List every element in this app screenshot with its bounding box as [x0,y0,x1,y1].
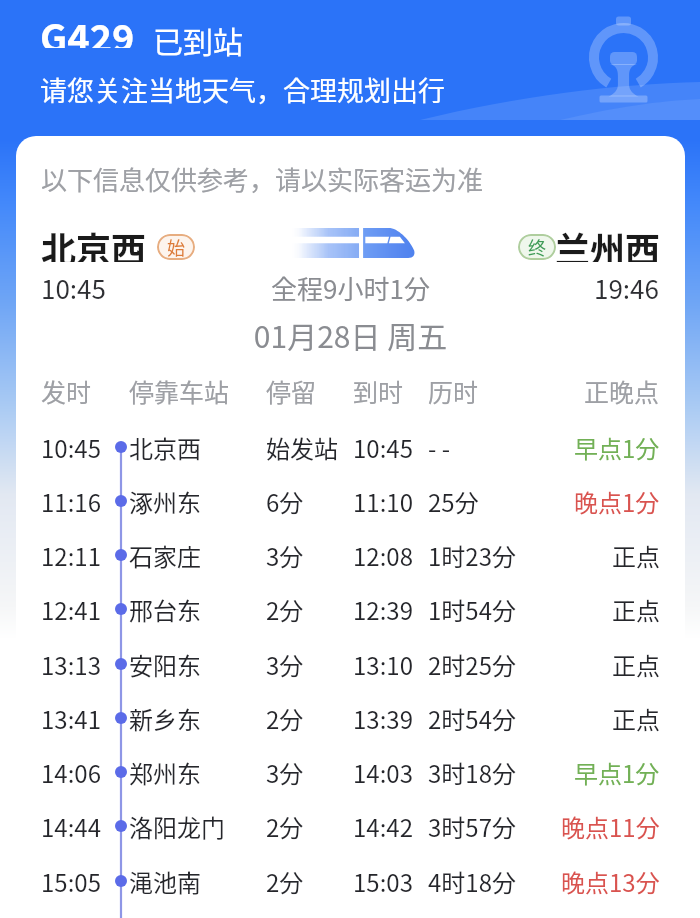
staticText: 全程9小时1分 [16,269,685,307]
staticText: 13:13 [41,647,101,682]
staticText: 4时18分 [428,864,516,899]
staticText: 3时57分 [428,809,516,844]
staticText: 正晚点 [584,373,660,409]
staticText: 2分 [266,809,304,844]
staticText: 正点 [612,538,660,573]
staticText: 洛阳龙门 [129,809,225,844]
button[interactable]: 13:41 [16,691,685,745]
staticText: 2时54分 [428,701,516,736]
staticText: 早点1分 [574,430,660,465]
staticText: 3分 [266,538,304,573]
staticText: 正点 [612,647,660,682]
staticText: 以下信息仅供参考，请以实际客运为准 [41,160,484,198]
staticText: 3分 [266,755,304,790]
staticText: 2分 [266,592,304,627]
staticText: 2时25分 [428,647,516,682]
staticText: 6分 [266,484,304,519]
button[interactable]: 14:06 [16,745,685,799]
staticText: 14:44 [41,809,101,844]
staticText: 12:41 [41,592,101,627]
staticText: 正点 [612,701,660,736]
staticText: 13:10 [353,647,413,682]
staticText: 14:42 [353,809,413,844]
staticText: 10:45 [353,430,413,465]
staticText: 01月28日 周五 [16,313,685,356]
staticText: 12:08 [353,538,413,573]
staticText: 兰州西 [555,222,661,262]
staticText: 晚点13分 [561,864,660,899]
staticText: 10:45 [41,269,106,307]
staticText: 1时23分 [428,538,516,573]
staticText: 正点 [612,592,660,627]
button[interactable]: 12:41 [16,582,685,636]
staticText: 北京西 [129,430,201,465]
staticText: 晚点11分 [561,809,660,844]
staticText: 2分 [266,701,304,736]
staticText: 到时 [353,373,404,409]
staticText: 13:39 [353,701,413,736]
button[interactable]: 11:16 [16,474,685,528]
staticText: 已到站 [153,18,243,58]
button[interactable]: 10:45 [16,420,685,474]
staticText: 晚点1分 [574,484,660,519]
staticText: 11:16 [41,484,101,519]
staticText: 始 [167,234,185,260]
staticText: 14:03 [353,755,413,790]
staticText: 早点1分 [574,755,660,790]
staticText: 新乡东 [129,701,201,736]
button[interactable]: 15:05 [16,854,685,908]
staticText: 渑池南 [129,864,201,899]
staticText: 13:41 [41,701,101,736]
staticText: 10:45 [41,430,101,465]
staticText: 邢台东 [129,592,201,627]
button[interactable]: 14:44 [16,799,685,853]
staticText: 19:46 [594,269,659,307]
staticText: 15:03 [353,864,413,899]
staticText: 25分 [428,484,479,519]
staticText: G429 [40,8,135,48]
staticText: 停靠车站 [129,373,230,409]
staticText: 1时54分 [428,592,516,627]
staticText: 郑州东 [129,755,201,790]
staticText: 发时 [41,373,92,409]
button[interactable]: 13:13 [16,637,685,691]
staticText: 终 [528,234,546,260]
staticText: 请您关注当地天气，合理规划出行 [40,70,445,109]
staticText: 安阳东 [129,647,201,682]
staticText: 12:11 [41,538,101,573]
staticText: 涿州东 [129,484,201,519]
staticText: 15:05 [41,864,101,899]
staticText: 历时 [428,373,479,409]
staticText: 始发站 [266,430,338,465]
other: China Railway [596,14,652,106]
staticText: 停留 [266,373,317,409]
staticText: 3时18分 [428,755,516,790]
button[interactable]: 12:11 [16,528,685,582]
staticText: 12:39 [353,592,413,627]
staticText: 3分 [266,647,304,682]
staticText: 14:06 [41,755,101,790]
staticText: 北京西 [41,222,147,262]
staticText: 2分 [266,864,304,899]
staticText: 11:10 [353,484,413,519]
staticText: - - [428,430,451,465]
staticText: 石家庄 [129,538,201,573]
